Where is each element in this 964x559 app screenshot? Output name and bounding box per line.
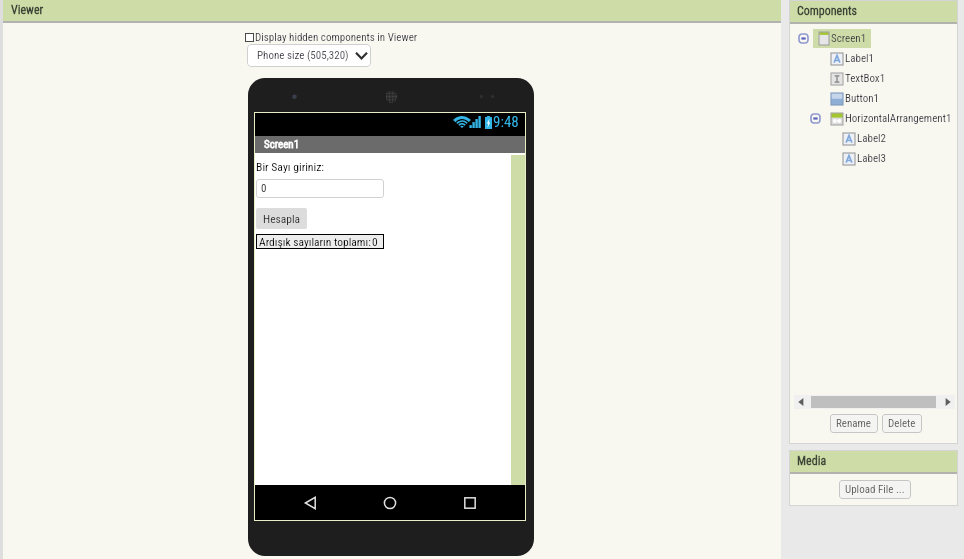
staticText: Upload File ... — [845, 483, 905, 496]
button[interactable]: Recent apps — [463, 496, 477, 510]
staticText: Label1 — [845, 52, 875, 65]
staticText: 0 — [261, 182, 267, 195]
staticText: Screen1 — [264, 138, 300, 151]
button[interactable]: Upload File ... — [839, 480, 911, 499]
staticText: Label3 — [857, 152, 887, 165]
staticText: Hesapla — [263, 212, 301, 225]
staticText: HorizontalArrangement1 — [845, 112, 952, 125]
staticText: Button1 — [845, 92, 880, 105]
staticText: Bir Sayı giriniz: — [256, 160, 325, 174]
staticText: Delete — [888, 417, 916, 430]
staticText: TextBox1 — [845, 72, 886, 85]
staticText: Label2 — [857, 132, 887, 145]
button[interactable]: Delete — [882, 414, 922, 433]
button[interactable]: Hesapla — [256, 208, 307, 229]
button[interactable]: Display hidden components in Viewer — [245, 31, 418, 44]
staticText: Viewer — [11, 3, 44, 17]
button[interactable]: TextBox1 — [789, 68, 958, 88]
staticText: Components — [797, 4, 858, 18]
button[interactable]: Rename — [830, 414, 878, 433]
staticText: 0 — [372, 235, 378, 248]
staticText: Display hidden components in Viewer — [255, 31, 418, 44]
staticText: Ardışık sayıların toplamı: — [259, 235, 371, 248]
button[interactable]: Back — [304, 496, 318, 510]
button[interactable]: HorizontalArrangement1 — [789, 108, 958, 128]
staticText: Screen1 — [831, 32, 867, 45]
button[interactable]: 0 — [256, 179, 384, 198]
staticText: Phone size (505,320) — [257, 49, 349, 62]
button[interactable]: Ardışık sayıların toplamı: — [257, 235, 383, 248]
button[interactable]: Home — [383, 496, 397, 510]
button[interactable]: Button1 — [789, 88, 958, 108]
button[interactable]: Label1 — [789, 48, 958, 68]
button[interactable]: Screen1 — [789, 28, 958, 48]
button[interactable]: Scroll right — [945, 398, 951, 406]
staticText: 9:48 — [493, 113, 519, 131]
button[interactable]: Phone size (505,320) — [247, 44, 371, 67]
button[interactable]: Label2 — [789, 128, 958, 148]
staticText: Media — [797, 454, 827, 468]
button[interactable]: Scroll left — [798, 398, 804, 406]
staticText: Rename — [836, 417, 872, 430]
button[interactable]: Label3 — [789, 148, 958, 168]
